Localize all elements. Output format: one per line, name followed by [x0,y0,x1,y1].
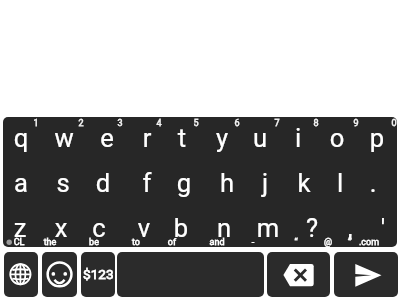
staticText: m [188,213,348,243]
staticText: 6 [157,118,317,129]
staticText: w [0,123,144,153]
button[interactable]: Emoji [42,252,77,297]
staticText: 8 [236,118,396,129]
staticText: u [180,123,340,153]
staticText: s [0,168,143,198]
staticText: and [137,237,297,248]
staticText: ' [303,213,400,243]
staticText: 3 [40,118,200,129]
staticText: be [14,237,174,248]
staticText: y [142,123,302,153]
staticText: i [218,123,378,153]
button[interactable]: Space [117,252,264,297]
staticText: 2 [1,118,161,129]
staticText: of [92,237,252,248]
staticText: ? [232,213,392,243]
button[interactable]: $123 [81,252,115,297]
staticText: b [101,213,261,243]
staticText: to [56,237,216,248]
staticText: r [67,123,227,153]
staticText: c [19,213,179,243]
staticText: p [297,123,400,153]
staticText: “ [216,237,376,248]
button[interactable]: Change keyboard language [4,252,38,297]
staticText: , [270,213,400,243]
staticText: x [0,213,141,243]
staticText: @ [248,237,400,248]
staticText: v [64,213,224,243]
staticText: CL [0,237,99,248]
staticText: e [27,123,187,153]
staticText: n [144,213,304,243]
staticText: ’ [271,237,400,248]
staticText: - [173,237,333,248]
button[interactable]: Send [334,252,398,297]
staticText: f [67,168,227,198]
staticText: t [102,123,262,153]
staticText: z [0,213,100,243]
staticText: q [0,123,101,153]
staticText: l [260,168,400,198]
staticText: k [224,168,384,198]
staticText: 9 [276,118,400,129]
staticText: 0 [314,118,400,129]
staticText: g [104,168,264,198]
button[interactable]: Backspace [267,252,330,297]
staticText: the [0,237,130,248]
staticText: j [185,168,345,198]
staticText: 7 [197,118,357,129]
staticText: 1 [0,118,116,129]
staticText: o [257,123,400,153]
staticText: .com [289,237,400,248]
staticText: 5 [116,118,276,129]
staticText: h [147,168,307,198]
staticText: a [0,168,101,198]
staticText: 4 [79,118,239,129]
staticText: d [23,168,183,198]
staticText: $123 [83,266,114,282]
staticText: . [293,168,400,198]
